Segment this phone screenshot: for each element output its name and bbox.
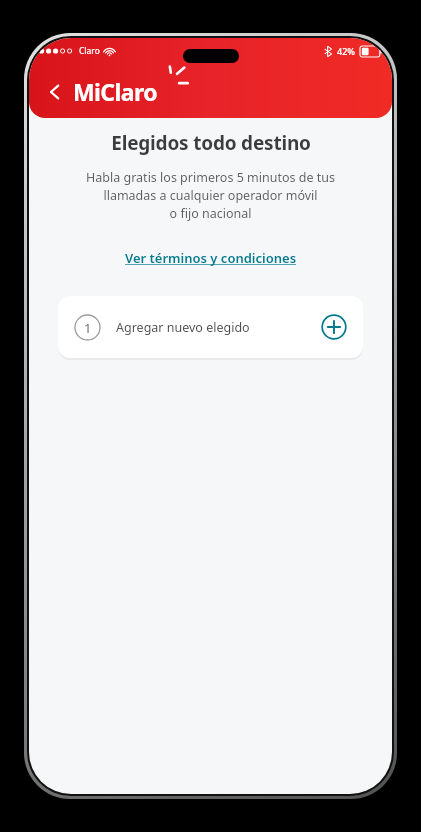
button[interactable]: Back — [37, 74, 73, 110]
button[interactable]: 1 — [58, 296, 363, 358]
other: Agregar — [321, 314, 347, 340]
staticText: 1 — [84, 319, 92, 337]
staticText: Habla gratis los primeros 5 minutos de t… — [86, 169, 335, 222]
staticText: Ver términos y condiciones — [125, 249, 297, 267]
staticText: MiClaro — [73, 76, 157, 107]
button[interactable]: Ver términos y condiciones — [119, 246, 303, 270]
staticText: Claro — [79, 45, 100, 57]
staticText: 42% — [337, 45, 355, 57]
staticText: Agregar nuevo elegido — [116, 319, 250, 336]
staticText: Elegidos todo destino — [111, 130, 311, 156]
